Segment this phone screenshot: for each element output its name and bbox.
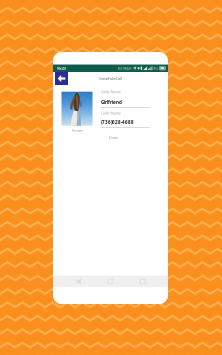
button[interactable]: Back (72, 275, 85, 289)
button[interactable]: Done (104, 132, 123, 143)
staticText: Caller Name (101, 111, 121, 115)
staticText: 4G (153, 66, 158, 71)
staticText: GreatFakeCall (99, 76, 122, 81)
staticText: 16:23 (56, 65, 65, 71)
staticText: Done (109, 135, 118, 140)
staticText: Girlfriend (101, 99, 122, 105)
staticText: Caller Name (101, 89, 121, 94)
staticText: Picture (71, 128, 82, 133)
staticText: (736)028-4688 (101, 119, 134, 125)
button[interactable]: Recents (136, 275, 149, 288)
staticText: 83.9Kb/s (118, 66, 132, 71)
button[interactable]: Back (55, 72, 68, 85)
button[interactable]: Home (104, 275, 117, 288)
